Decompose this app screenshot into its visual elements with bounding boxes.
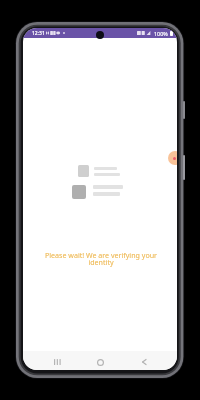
- staticText: 12:31: [32, 30, 45, 37]
- button[interactable]: Recent apps: [51, 357, 64, 367]
- button[interactable]: Back: [137, 357, 150, 367]
- button[interactable]: Assistant: [168, 151, 177, 165]
- button[interactable]: Home: [94, 357, 107, 367]
- staticText: 100%: [154, 30, 168, 37]
- staticText: Please wait! We are verifying your ident…: [38, 250, 164, 267]
